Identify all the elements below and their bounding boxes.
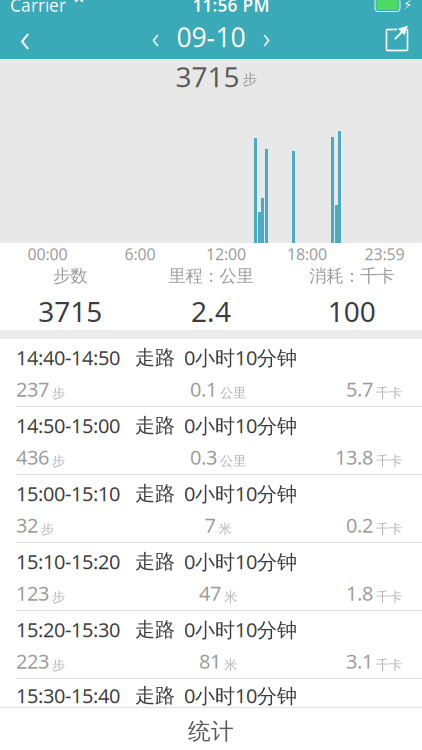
staticText: 123	[16, 580, 49, 606]
staticText: 09-10	[176, 19, 245, 55]
button[interactable]: 14:50-15:00	[0, 407, 422, 474]
staticText: 23:59	[364, 243, 404, 265]
button[interactable]: 14:40-14:50	[0, 339, 422, 406]
staticText: 0.1	[190, 376, 217, 402]
staticText: 15:20-15:30	[16, 616, 120, 643]
staticText: 2.4	[191, 293, 231, 330]
staticText: 11:56 PM	[192, 0, 269, 16]
staticText: 0小时10分钟	[184, 682, 297, 709]
staticText: 3715	[38, 293, 102, 330]
staticText: 里程：公里	[168, 265, 253, 287]
staticText: Carrier	[10, 0, 66, 16]
staticText: 32	[16, 512, 38, 538]
staticText: 00:00	[27, 243, 67, 265]
staticText: 15:00-15:10	[16, 480, 120, 507]
staticText: 13.8	[335, 444, 373, 470]
staticText: 千卡	[376, 589, 402, 605]
staticText: 步	[52, 385, 65, 401]
button[interactable]: 15:30-15:40	[0, 679, 422, 707]
staticText: 237	[16, 376, 49, 402]
staticText: 千卡	[376, 453, 402, 469]
staticText: ‹	[19, 10, 30, 63]
staticText: 步	[242, 70, 257, 88]
staticText: 6:00	[124, 243, 155, 265]
staticText: 7	[204, 512, 215, 538]
staticText: 0小时10分钟	[184, 616, 297, 643]
staticText: 消耗：千卡	[309, 265, 394, 287]
staticText: 米	[224, 657, 237, 673]
staticText: 15:30-15:40	[16, 682, 120, 709]
staticText: 米	[218, 521, 231, 537]
staticText: 12:00	[206, 243, 246, 265]
staticText: ⌃	[70, 0, 87, 16]
staticText: 走路	[135, 683, 175, 708]
staticText: 千卡	[376, 385, 402, 401]
staticText: 走路	[135, 413, 175, 438]
staticText: 走路	[135, 617, 175, 642]
staticText: 0小时10分钟	[184, 412, 297, 439]
staticText: 3715	[175, 58, 246, 95]
staticText: ⚡︎	[403, 0, 412, 12]
staticText: ›	[262, 17, 270, 56]
staticText: 3.1	[346, 648, 373, 674]
staticText: 步	[52, 589, 65, 605]
staticText: 步	[52, 657, 65, 673]
staticText: 14:50-15:00	[16, 412, 120, 439]
button[interactable]: 15:20-15:30	[0, 611, 422, 678]
staticText: ▲	[400, 21, 409, 35]
staticText: 0小时10分钟	[184, 480, 297, 507]
staticText: 步	[52, 453, 65, 469]
staticText: 走路	[135, 481, 175, 506]
staticText: 步	[41, 521, 54, 537]
staticText: 走路	[135, 549, 175, 574]
staticText: 436	[16, 444, 49, 470]
staticText: 米	[224, 589, 237, 605]
button[interactable]: Previous day	[144, 17, 166, 57]
staticText: 5.7	[346, 376, 373, 402]
staticText: 47	[199, 580, 221, 606]
staticText: 0小时10分钟	[184, 548, 297, 575]
staticText: 千卡	[376, 657, 402, 673]
staticText: 统计	[188, 718, 234, 745]
button[interactable]: 15:00-15:10	[0, 475, 422, 542]
staticText: 81	[199, 648, 221, 674]
button[interactable]: 15:10-15:20	[0, 543, 422, 610]
staticText: 走路	[135, 345, 175, 370]
button[interactable]: Back	[0, 15, 50, 59]
staticText: ‹	[151, 17, 159, 56]
button[interactable]: Next day	[255, 17, 277, 57]
button[interactable]: Share	[372, 15, 422, 59]
staticText: 14:40-14:50	[16, 344, 120, 371]
staticText: 15:10-15:20	[16, 548, 120, 575]
staticText: 步数	[53, 265, 87, 287]
staticText: 0小时10分钟	[184, 344, 297, 371]
staticText: 公里	[220, 385, 246, 401]
staticText: 公里	[220, 453, 246, 469]
staticText: 100	[328, 293, 376, 330]
staticText: 1.8	[346, 580, 373, 606]
staticText: 18:00	[287, 243, 327, 265]
staticText: 0.3	[190, 444, 217, 470]
staticText: 223	[16, 648, 49, 674]
button[interactable]: 统计	[0, 708, 422, 750]
staticText: 0.2	[346, 512, 373, 538]
staticText: 千卡	[376, 521, 402, 537]
